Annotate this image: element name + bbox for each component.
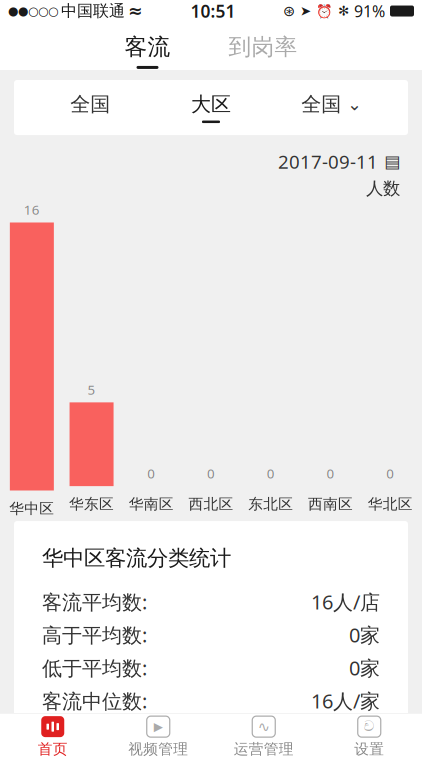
staticText: ▤ (384, 152, 400, 171)
staticText: ⊛ (283, 3, 295, 19)
button[interactable]: ▶ (105, 714, 211, 761)
staticText: 首页 (38, 740, 68, 758)
button[interactable]: 首页 (0, 714, 105, 761)
staticText: 5 (88, 381, 96, 398)
staticText: 16人/家 (311, 687, 380, 714)
staticText: 0 (207, 464, 215, 482)
staticText: 客流中位数: (42, 687, 147, 714)
staticText: 0 (326, 464, 334, 482)
button[interactable]: 到岗率 (222, 23, 303, 69)
staticText: 西南区 (308, 495, 353, 513)
staticText: 低于平均数: (42, 654, 147, 681)
staticText: 中国联通 (61, 1, 125, 21)
staticText: 视频管理 (128, 740, 188, 758)
staticText: ∿ (258, 718, 270, 735)
staticText: 到岗率 (228, 33, 297, 61)
staticText: 东北区 (248, 495, 293, 513)
staticText: 人数 (366, 178, 400, 199)
button[interactable]: 全国 (30, 80, 151, 135)
button[interactable]: ∿ (211, 714, 316, 761)
button[interactable]: 选择日期 (384, 152, 400, 171)
staticText: 华中区 (9, 499, 54, 517)
button[interactable]: 大区 (151, 80, 271, 135)
staticText: 91% (354, 0, 385, 22)
staticText: ●●○○○ (8, 4, 58, 18)
staticText: 大区 (191, 92, 231, 117)
button[interactable]: 客流 (118, 23, 176, 69)
staticText: ▶ (154, 720, 163, 733)
staticText: 华南区 (129, 495, 174, 513)
button[interactable]: 全国 (271, 80, 392, 135)
staticText: 华东区 (69, 495, 114, 513)
staticText: 高于平均数: (42, 621, 147, 648)
staticText: 0 (386, 464, 394, 482)
staticText: 设置 (354, 740, 384, 758)
staticText: 客流平均数: (42, 588, 147, 615)
staticText: 西北区 (188, 495, 233, 513)
staticText: 运营管理 (234, 740, 294, 758)
staticText: 华中区客流分类统计 (42, 545, 231, 571)
staticText: 16 (24, 201, 40, 218)
staticText: 16人/店 (311, 588, 380, 615)
staticText: 全国 (301, 92, 341, 117)
staticText: 2017-09-11 (278, 149, 378, 174)
staticText: 0家 (349, 621, 380, 648)
staticText: 0 (267, 464, 275, 482)
staticText: 华北区 (368, 495, 413, 513)
staticText: ✻ (338, 3, 349, 18)
staticText: ➤ (300, 3, 311, 18)
staticText: ච (364, 719, 375, 734)
staticText: ≈ (128, 1, 143, 21)
staticText: 全国 (70, 92, 110, 117)
staticText: 客流 (124, 33, 170, 61)
staticText: ⌄ (347, 94, 362, 114)
staticText: 10:51 (190, 0, 235, 22)
staticText: ⏰ (316, 3, 333, 19)
staticText: 0 (147, 464, 155, 482)
staticText: 0家 (349, 654, 380, 681)
button[interactable]: ච (316, 714, 422, 761)
